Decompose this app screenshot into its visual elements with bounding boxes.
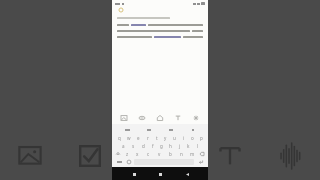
button[interactable]: w [124, 134, 134, 141]
button[interactable] [182, 126, 204, 133]
staticText: v [158, 151, 161, 157]
button[interactable]: Image note [16, 142, 44, 170]
staticText: j [179, 143, 181, 149]
staticText: q [118, 135, 121, 141]
staticText: r [147, 135, 149, 141]
button[interactable] [160, 126, 182, 133]
staticText: y [164, 135, 167, 141]
button[interactable]: f [148, 142, 157, 149]
staticText: d [142, 143, 145, 149]
button[interactable]: Numbers and symbols [115, 159, 124, 165]
button[interactable]: Recent apps [129, 169, 139, 179]
button[interactable]: Shift [114, 150, 122, 157]
button[interactable]: e [134, 134, 143, 141]
button[interactable]: More options [191, 113, 201, 123]
button[interactable]: Pin note [118, 7, 124, 13]
button[interactable]: y [161, 134, 170, 141]
button[interactable]: o [188, 134, 197, 141]
button[interactable]: Add reminder [155, 113, 165, 123]
button[interactable]: Add image [119, 113, 129, 123]
staticText: h [169, 143, 172, 149]
button[interactable]: h [166, 142, 175, 149]
button[interactable]: k [184, 142, 193, 149]
button[interactable]: z [122, 150, 132, 157]
staticText: p [200, 135, 203, 141]
button[interactable]: n [176, 150, 187, 157]
button[interactable] [116, 126, 138, 133]
button[interactable]: l [193, 142, 202, 149]
staticText: m [190, 151, 195, 157]
staticText: n [180, 151, 183, 157]
staticText: o [191, 135, 194, 141]
button[interactable]: v [154, 150, 165, 157]
button[interactable]: Home [155, 169, 165, 179]
button[interactable]: i [179, 134, 188, 141]
staticText: z [126, 151, 129, 157]
staticText: k [187, 143, 190, 149]
button[interactable]: Emoji [126, 159, 132, 165]
staticText: l [197, 143, 199, 149]
button[interactable]: j [175, 142, 184, 149]
button[interactable]: b [165, 150, 176, 157]
button[interactable]: g [157, 142, 166, 149]
staticText: s [132, 143, 135, 149]
button[interactable]: Add drawing [137, 113, 147, 123]
button[interactable]: m [187, 150, 198, 157]
button[interactable]: x [132, 150, 143, 157]
button[interactable]: q [114, 134, 124, 141]
staticText: b [169, 151, 172, 157]
button[interactable]: Audio note [276, 142, 304, 170]
button[interactable] [138, 126, 160, 133]
button[interactable]: d [138, 142, 148, 149]
staticText: g [160, 143, 163, 149]
staticText: w [127, 135, 131, 141]
button[interactable]: Backspace [198, 150, 206, 157]
button[interactable]: p [197, 134, 206, 141]
staticText: a [122, 143, 125, 149]
staticText: e [137, 135, 140, 141]
button[interactable]: a [118, 142, 128, 149]
button[interactable]: Text note [216, 142, 244, 170]
button[interactable]: c [143, 150, 154, 157]
button[interactable]: Enter [197, 159, 205, 165]
button[interactable]: Checklist note [76, 142, 104, 170]
staticText: x [136, 151, 139, 157]
staticText: f [152, 143, 154, 149]
button[interactable]: s [128, 142, 138, 149]
button[interactable]: u [170, 134, 179, 141]
button[interactable]: Format text [173, 113, 183, 123]
button[interactable]: r [143, 134, 152, 141]
button[interactable]: Back [182, 169, 192, 179]
button[interactable]: t [152, 134, 161, 141]
staticText: u [173, 135, 176, 141]
staticText: c [147, 151, 150, 157]
staticText: t [156, 135, 158, 141]
staticText: i [183, 135, 185, 141]
